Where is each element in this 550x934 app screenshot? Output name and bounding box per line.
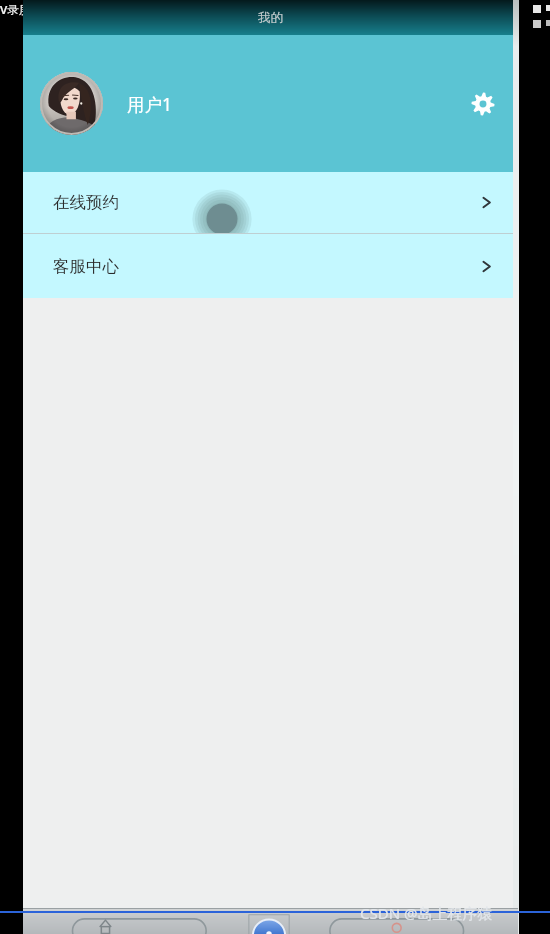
staticText: 客服中心 — [53, 256, 119, 277]
staticText: 在线预约 — [53, 192, 119, 213]
staticText: CSDN @岛上程序猿 — [360, 903, 493, 923]
button[interactable]: 客服中心 — [23, 234, 518, 298]
staticText: 我的 — [258, 10, 283, 26]
button[interactable]: Settings — [461, 82, 505, 126]
staticText: 用户1 — [127, 92, 173, 116]
button[interactable]: 在线预约 — [23, 172, 518, 233]
staticText: V录屏3.9.7软件录制 — [0, 2, 103, 18]
